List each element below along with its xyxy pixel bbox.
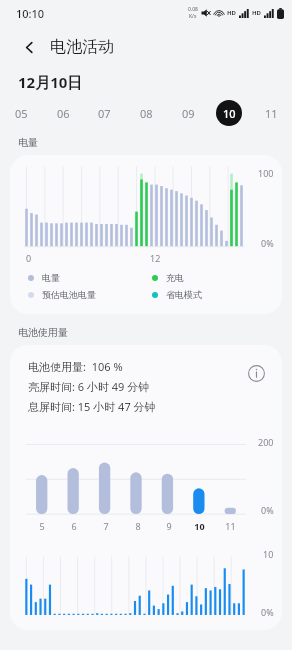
staticText: 9: [166, 520, 172, 532]
button[interactable]: 100: [10, 155, 282, 314]
staticText: 8: [135, 520, 141, 532]
staticText: 电量: [42, 272, 60, 283]
button[interactable]: 10: [216, 100, 242, 126]
staticText: 电池活动: [50, 37, 114, 57]
button[interactable]: 07: [91, 100, 117, 126]
staticText: 100: [258, 167, 274, 179]
staticText: 6: [71, 520, 77, 532]
staticText: 09: [182, 106, 195, 121]
staticText: 省电模式: [166, 289, 202, 300]
staticText: 12: [150, 252, 161, 264]
staticText: 电量: [18, 136, 38, 149]
button[interactable]: 06: [50, 100, 76, 126]
staticText: 10: [223, 106, 236, 121]
staticText: 5: [39, 520, 45, 532]
button[interactable]: 08: [133, 100, 159, 126]
button[interactable]: Back: [14, 32, 44, 62]
button[interactable]: 05: [8, 100, 34, 126]
staticText: HD: [227, 9, 236, 17]
staticText: 08: [140, 106, 153, 121]
button[interactable]: 09: [175, 100, 201, 126]
staticText: 7: [103, 520, 109, 532]
staticText: 0: [26, 252, 32, 264]
staticText: K/s: [189, 13, 197, 20]
staticText: 亮屏时间: 6 小时 49 分钟: [28, 379, 150, 394]
staticText: HD: [252, 9, 261, 17]
staticText: 10: [194, 520, 205, 532]
staticText: 07: [98, 106, 111, 121]
staticText: 息屏时间: 15 小时 47 分钟: [28, 399, 156, 414]
staticText: 06: [57, 106, 70, 121]
staticText: 0%: [261, 606, 274, 618]
staticText: 10: [263, 548, 274, 560]
staticText: 0.08: [188, 6, 198, 13]
button[interactable]: 11: [258, 100, 284, 126]
staticText: 预估电池电量: [42, 289, 96, 300]
staticText: 200: [258, 436, 274, 448]
staticText: 05: [15, 106, 28, 121]
staticText: 电池使用量: 106 %: [28, 359, 123, 374]
staticText: 10:10: [16, 6, 45, 21]
staticText: 0%: [261, 504, 274, 516]
staticText: 11: [265, 106, 278, 121]
staticText: 电池使用量: [18, 326, 68, 339]
staticText: 充电: [166, 272, 184, 283]
staticText: 12月10日: [18, 72, 83, 92]
button[interactable]: Info: [242, 359, 270, 387]
staticText: 0%: [261, 237, 274, 249]
staticText: 11: [225, 520, 236, 532]
